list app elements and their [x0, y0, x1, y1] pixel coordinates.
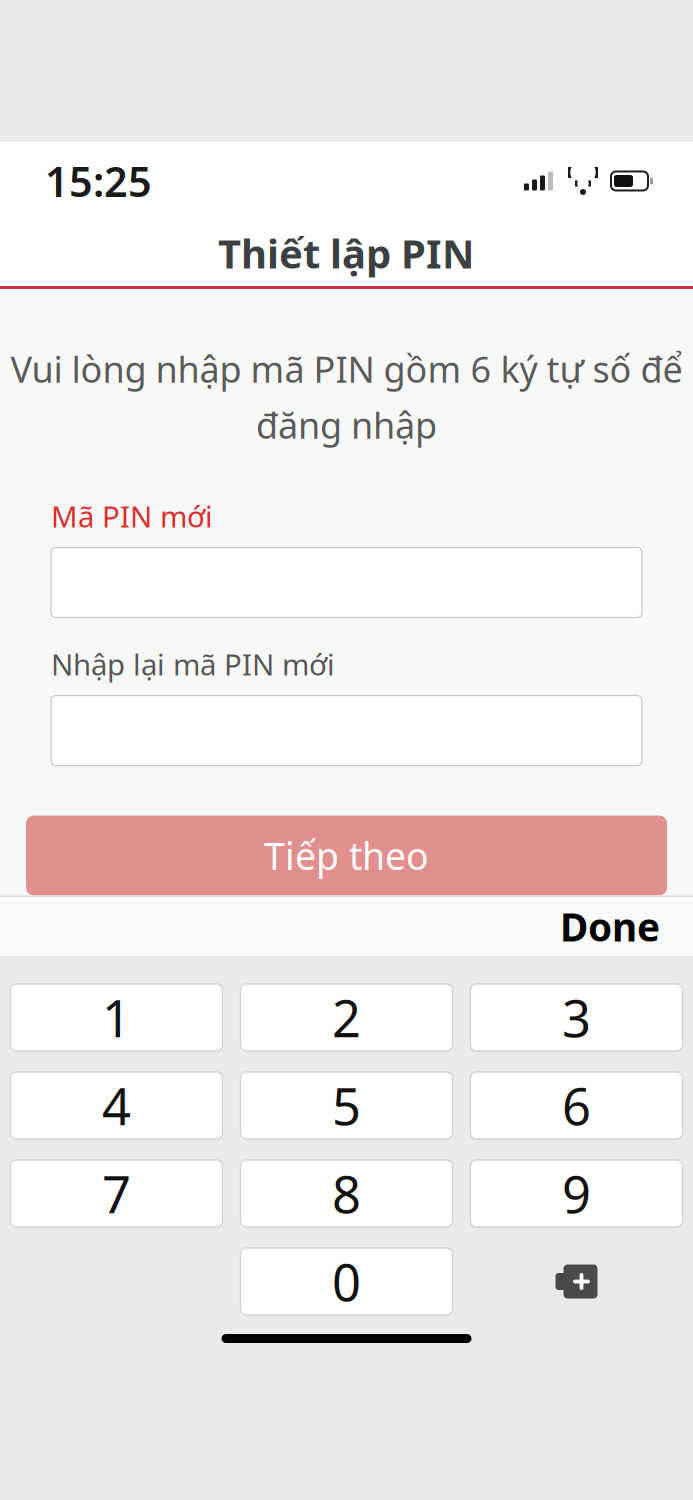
staticText: 3: [562, 984, 591, 1051]
staticText: 7: [102, 1160, 131, 1227]
button[interactable]: 0: [240, 1248, 452, 1315]
staticText: 1: [102, 984, 131, 1051]
staticText: 5: [332, 1072, 361, 1139]
staticText: Nhập lại mã PIN mới: [51, 645, 335, 684]
staticText: Vui lòng nhập mã PIN gồm 6 ký tự số để: [10, 345, 682, 393]
staticText: 4: [102, 1072, 131, 1139]
staticText: 2: [332, 984, 361, 1051]
button[interactable]: 5: [240, 1072, 452, 1139]
button[interactable]: 6: [470, 1072, 682, 1139]
staticText: Thiết lập PIN: [218, 226, 475, 279]
button[interactable]: 2: [240, 984, 452, 1051]
staticText: 15:25: [45, 153, 152, 208]
staticText: 8: [332, 1160, 361, 1227]
staticText: Mã PIN mới: [51, 497, 213, 536]
staticText: 6: [562, 1072, 591, 1139]
staticText: 0: [332, 1248, 361, 1315]
button[interactable]: 7: [10, 1160, 222, 1227]
button[interactable]: Done: [544, 889, 676, 964]
staticText: đăng nhập: [256, 401, 437, 449]
staticText: Tiếp theo: [264, 831, 429, 880]
button[interactable]: 3: [470, 984, 682, 1051]
button[interactable]: Delete: [470, 1248, 682, 1315]
button[interactable]: 8: [240, 1160, 452, 1227]
staticText: 9: [562, 1160, 591, 1227]
staticText: Done: [560, 901, 660, 952]
button[interactable]: 4: [10, 1072, 222, 1139]
button[interactable]: 1: [10, 984, 222, 1051]
button[interactable]: Tiếp theo: [26, 815, 667, 895]
button[interactable]: 9: [470, 1160, 682, 1227]
